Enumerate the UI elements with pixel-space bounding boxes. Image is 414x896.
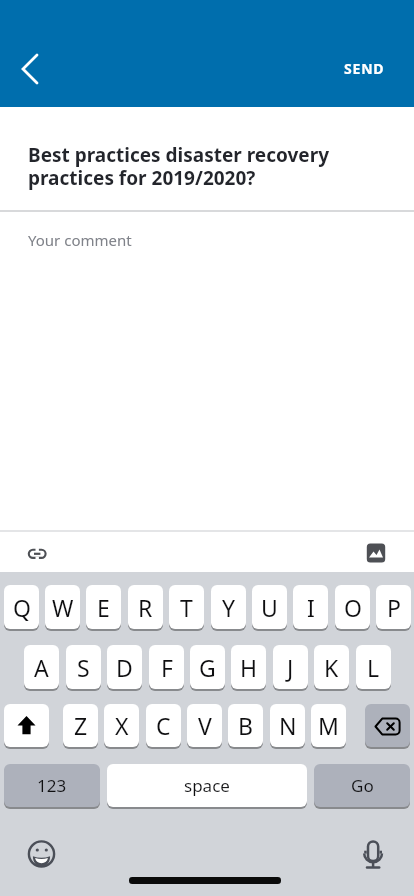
button[interactable]: SEND [326, 46, 402, 91]
staticText: S [77, 652, 90, 683]
staticText: Y [222, 592, 236, 623]
staticText: A [34, 652, 49, 683]
staticText: Go [351, 774, 374, 797]
staticText: G [199, 652, 216, 683]
staticText: Q [13, 592, 31, 623]
staticText: E [97, 592, 110, 623]
button[interactable] [349, 830, 397, 878]
button[interactable]: H [231, 645, 266, 689]
staticText: L [367, 652, 380, 683]
button[interactable] [6, 45, 54, 93]
staticText: D [116, 652, 133, 683]
button[interactable]: A [24, 645, 59, 689]
staticText: H [240, 652, 258, 683]
staticText: SEND [344, 59, 385, 78]
staticText: M [318, 710, 339, 741]
button[interactable] [13, 529, 61, 577]
staticText: C [156, 710, 171, 741]
button[interactable]: space [107, 764, 307, 807]
staticText: Z [74, 710, 88, 741]
button[interactable]: U [252, 585, 287, 629]
button[interactable]: W [45, 585, 80, 629]
button[interactable]: R [128, 585, 163, 629]
button[interactable]: Go [314, 764, 410, 807]
button[interactable]: X [104, 704, 139, 747]
staticText: Best practices disaster recovery practic… [28, 142, 330, 190]
button[interactable]: 123 [4, 764, 100, 807]
button[interactable]: C [146, 704, 181, 747]
button[interactable] [4, 704, 49, 747]
staticText: W [52, 592, 74, 623]
staticText: X [115, 710, 129, 741]
button[interactable] [352, 529, 400, 577]
staticText: T [180, 592, 193, 623]
staticText: I [307, 592, 315, 623]
button[interactable]: J [273, 645, 308, 689]
button[interactable]: G [190, 645, 225, 689]
button[interactable] [17, 830, 66, 879]
button[interactable]: Z [63, 704, 98, 747]
staticText: V [198, 710, 212, 741]
button[interactable]: P [376, 585, 411, 629]
staticText: K [324, 652, 339, 683]
button[interactable]: Q [4, 585, 39, 629]
staticText: O [344, 592, 362, 623]
button[interactable]: D [107, 645, 142, 689]
button[interactable] [365, 704, 410, 747]
staticText: U [261, 592, 278, 623]
button[interactable]: F [149, 645, 184, 689]
button[interactable]: L [356, 645, 391, 689]
staticText: 123 [37, 774, 67, 797]
staticText: F [161, 652, 173, 683]
button[interactable]: M [311, 704, 346, 747]
staticText: J [287, 652, 294, 683]
button[interactable]: B [228, 704, 263, 747]
button[interactable]: S [66, 645, 101, 689]
staticText: space [184, 774, 230, 797]
staticText: N [279, 710, 297, 741]
button[interactable]: V [187, 704, 222, 747]
button[interactable]: K [314, 645, 349, 689]
staticText: R [138, 592, 153, 623]
button[interactable]: E [86, 585, 121, 629]
staticText: B [238, 710, 253, 741]
button[interactable]: I [293, 585, 328, 629]
button[interactable]: Y [211, 585, 246, 629]
button[interactable]: N [270, 704, 305, 747]
button[interactable]: O [335, 585, 370, 629]
button[interactable]: T [169, 585, 204, 629]
staticText: Your comment [28, 230, 132, 250]
staticText: P [387, 592, 401, 623]
